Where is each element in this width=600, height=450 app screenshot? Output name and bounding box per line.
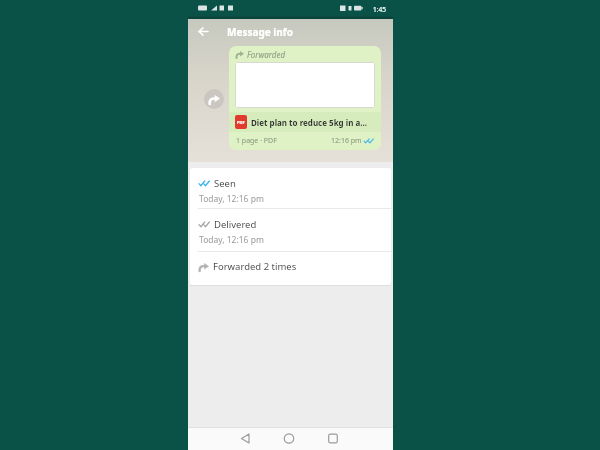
button[interactable] <box>204 89 224 109</box>
staticText: Today, 12:16 pm <box>199 193 264 205</box>
staticText: Delivered <box>214 218 257 231</box>
button[interactable] <box>188 427 257 450</box>
staticText: 1:45 <box>373 5 386 14</box>
staticText: Message info <box>227 25 293 39</box>
button[interactable]: Delivered <box>190 209 391 251</box>
staticText: 1 page · PDF <box>236 136 277 146</box>
staticText: Seen <box>214 177 236 190</box>
button[interactable] <box>188 19 218 44</box>
staticText: Forwarded 2 times <box>213 260 297 273</box>
button[interactable]: Forwarded 2 times <box>190 252 391 285</box>
staticText: Diet plan to reduce 5kg in a... <box>251 117 367 128</box>
button[interactable] <box>257 427 325 450</box>
staticText: Today, 12:16 pm <box>199 234 264 246</box>
button[interactable]: Seen <box>190 168 391 208</box>
button[interactable]: Forwarded <box>229 46 381 150</box>
staticText: 12:16 pm <box>331 136 362 146</box>
button[interactable] <box>325 427 393 450</box>
staticText: Forwarded <box>247 49 286 60</box>
staticText: PDF <box>237 120 245 125</box>
